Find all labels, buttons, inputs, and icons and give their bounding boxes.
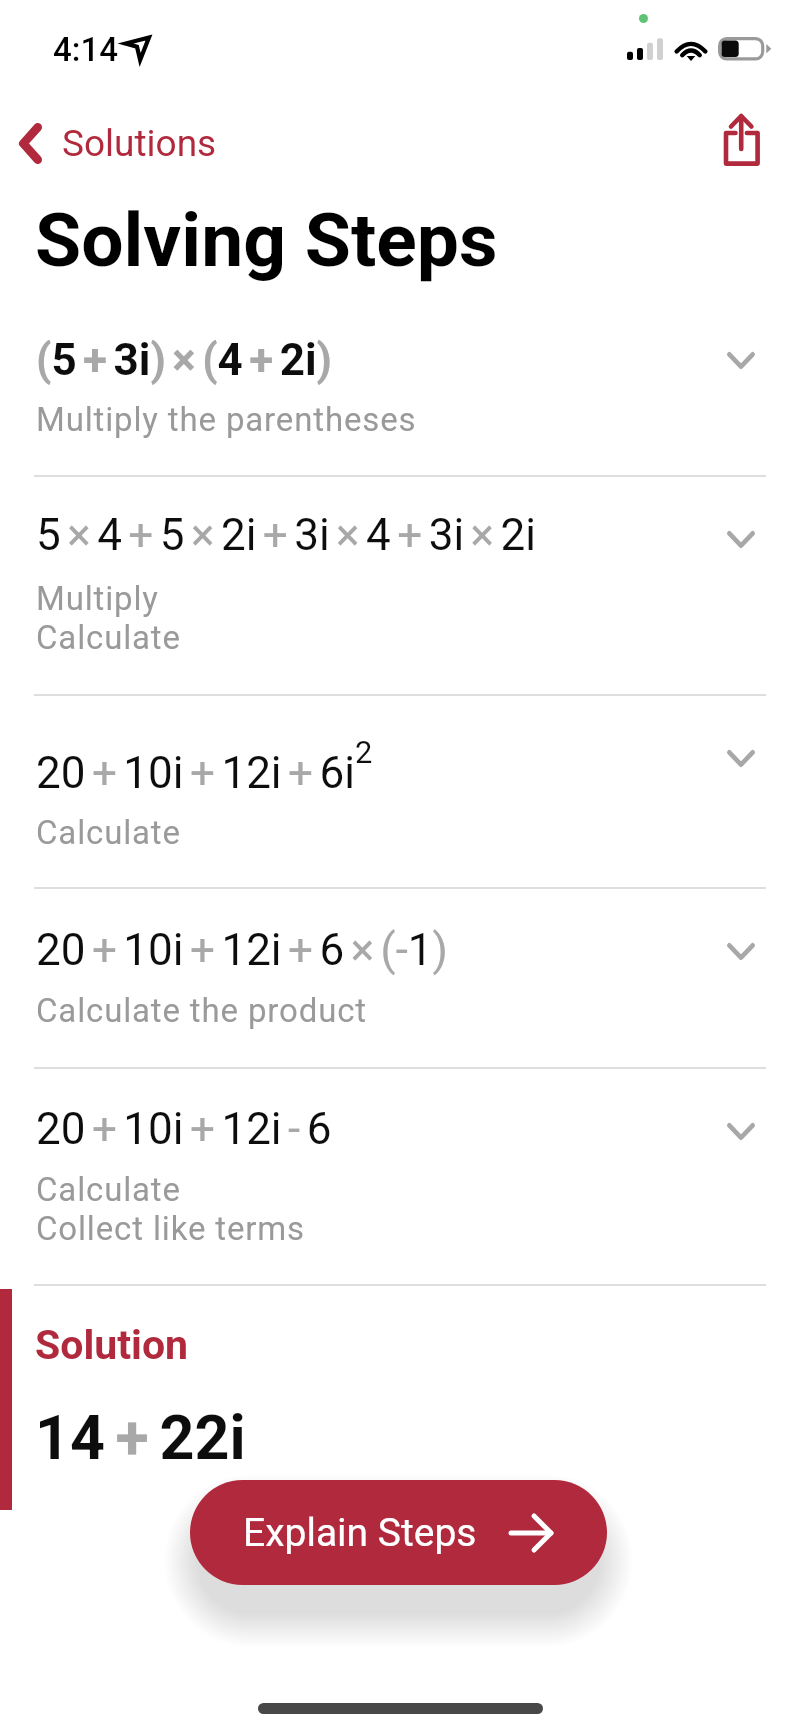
staticText: Explain Steps — [243, 1510, 477, 1556]
staticText: Calculate — [36, 813, 181, 852]
button[interactable]: Solutions — [0, 114, 231, 173]
staticText: Solutions — [62, 122, 217, 165]
staticText: 20 + 10i + 12i + 6 × (-1) — [36, 924, 448, 976]
staticText: 14 + 22i — [35, 1402, 246, 1473]
staticText: 5 × 4 + 5 × 2i + 3i × 4 + 3i × 2i — [36, 509, 536, 561]
button[interactable]: (5 + 3i) × (4 + 2i) — [0, 284, 800, 475]
button[interactable]: 5 × 4 + 5 × 2i + 3i × 4 + 3i × 2i — [0, 477, 800, 694]
button[interactable]: Explain Steps — [190, 1480, 607, 1585]
staticText: Calculate — [36, 1170, 181, 1209]
staticText: Solution — [35, 1321, 189, 1369]
staticText: Solving Steps — [35, 196, 498, 284]
staticText: 20 + 10i + 12i - 6 — [36, 1103, 332, 1155]
staticText: Collect like terms — [36, 1209, 305, 1248]
staticText: Calculate — [36, 618, 181, 657]
button[interactable]: 20 + 10i + 12i + 6 × (-1) — [0, 889, 800, 1067]
staticText: 20 + 10i + 12i + 6i2 — [36, 734, 373, 799]
button[interactable]: 20 + 10i + 12i - 6 — [0, 1069, 800, 1284]
staticText: Calculate the product — [36, 991, 367, 1030]
button[interactable]: 20 + 10i + 12i + 6i2 — [0, 696, 800, 887]
button[interactable]: Share — [712, 101, 770, 173]
staticText: (5 + 3i) × (4 + 2i) — [36, 334, 333, 386]
staticText: Multiply — [36, 579, 159, 618]
staticText: 4:14 — [53, 30, 118, 69]
staticText: Multiply the parentheses — [36, 400, 417, 439]
